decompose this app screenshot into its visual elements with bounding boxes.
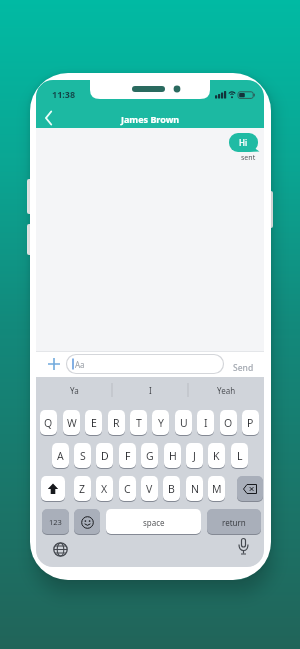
- staticText: return: [222, 517, 246, 528]
- staticText: 123: [49, 517, 62, 527]
- button[interactable]: Send: [233, 362, 254, 374]
- button[interactable]: V: [141, 476, 158, 502]
- staticText: L: [237, 449, 243, 463]
- button[interactable]: 123: [42, 509, 69, 535]
- button[interactable]: R: [108, 410, 125, 436]
- staticText: I: [149, 385, 152, 396]
- button[interactable]: [42, 106, 58, 126]
- staticText: S: [80, 449, 86, 463]
- button[interactable]: G: [141, 443, 158, 469]
- button[interactable]: D: [96, 443, 113, 469]
- button[interactable]: N: [186, 476, 203, 502]
- button[interactable]: I: [112, 377, 188, 403]
- staticText: Ya: [70, 385, 79, 396]
- button[interactable]: A: [52, 443, 69, 469]
- button[interactable]: T: [130, 410, 147, 436]
- staticText: Z: [79, 482, 86, 496]
- button[interactable]: O: [220, 410, 237, 436]
- button[interactable]: space: [106, 509, 201, 535]
- button[interactable]: S: [74, 443, 91, 469]
- button[interactable]: J: [186, 443, 203, 469]
- button[interactable]: [237, 476, 263, 502]
- staticText: T: [136, 416, 142, 430]
- staticText: sent: [241, 153, 256, 163]
- button[interactable]: I: [197, 410, 214, 436]
- staticText: Hi: [239, 137, 248, 148]
- staticText: I: [204, 416, 208, 430]
- staticText: R: [113, 416, 120, 430]
- button[interactable]: C: [119, 476, 136, 502]
- staticText: Yeah: [217, 385, 236, 396]
- button[interactable]: L: [231, 443, 248, 469]
- staticText: M: [212, 482, 222, 496]
- button[interactable]: W: [63, 410, 80, 436]
- staticText: W: [67, 416, 77, 430]
- button[interactable]: K: [208, 443, 225, 469]
- staticText: E: [91, 416, 97, 430]
- staticText: space: [143, 517, 165, 528]
- button[interactable]: E: [85, 410, 102, 436]
- button[interactable]: [46, 356, 62, 372]
- button[interactable]: H: [164, 443, 181, 469]
- button[interactable]: [238, 538, 249, 555]
- button[interactable]: Z: [74, 476, 91, 502]
- staticText: J: [193, 449, 196, 463]
- staticText: V: [146, 482, 153, 496]
- button[interactable]: [74, 509, 100, 535]
- button[interactable]: [53, 542, 68, 557]
- staticText: O: [224, 416, 233, 430]
- button[interactable]: Aa: [66, 354, 224, 374]
- staticText: X: [101, 482, 108, 496]
- staticText: D: [101, 449, 109, 463]
- staticText: P: [247, 416, 254, 430]
- button[interactable]: Q: [40, 410, 57, 436]
- staticText: A: [57, 449, 64, 463]
- staticText: G: [146, 449, 154, 463]
- button[interactable]: F: [119, 443, 136, 469]
- button[interactable]: X: [96, 476, 113, 502]
- staticText: Aa: [75, 359, 85, 370]
- button[interactable]: P: [242, 410, 259, 436]
- staticText: Y: [158, 416, 164, 430]
- staticText: Q: [44, 416, 53, 430]
- staticText: H: [169, 449, 177, 463]
- staticText: James Brown: [121, 113, 180, 125]
- button[interactable]: Hi: [229, 133, 258, 152]
- staticText: 11:38: [52, 88, 76, 100]
- button[interactable]: Yeah: [188, 377, 264, 403]
- staticText: U: [180, 416, 188, 430]
- button[interactable]: return: [207, 509, 261, 535]
- staticText: K: [213, 449, 220, 463]
- staticText: N: [191, 482, 199, 496]
- button[interactable]: B: [163, 476, 180, 502]
- button[interactable]: [41, 476, 65, 502]
- button[interactable]: M: [208, 476, 225, 502]
- button[interactable]: U: [175, 410, 192, 436]
- button[interactable]: Y: [152, 410, 169, 436]
- button[interactable]: Ya: [36, 377, 112, 403]
- staticText: B: [168, 482, 175, 496]
- staticText: C: [124, 482, 131, 496]
- staticText: F: [125, 449, 131, 463]
